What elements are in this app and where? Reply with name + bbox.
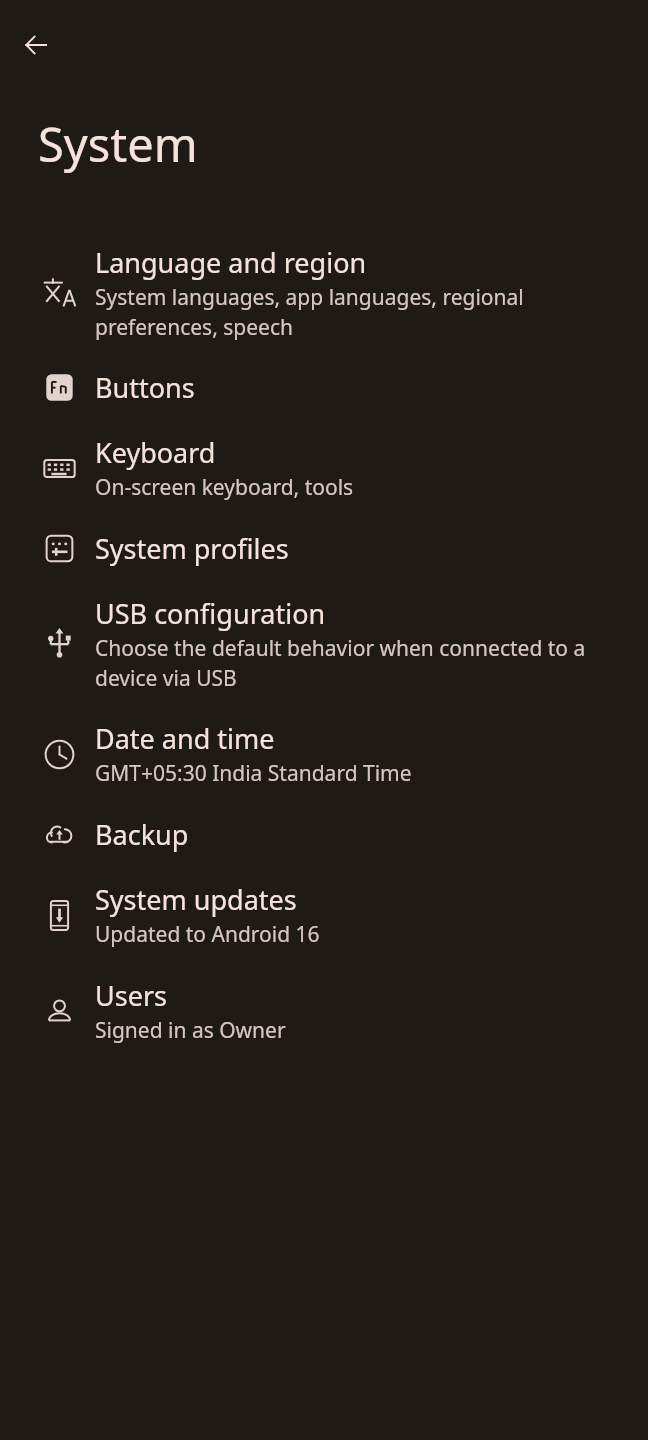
staticText: On-screen keyboard, tools xyxy=(95,473,354,502)
staticText: Date and time xyxy=(95,720,275,757)
staticText: Users xyxy=(95,977,167,1014)
button[interactable]: Backup xyxy=(0,802,648,867)
staticText: Choose the default behavior when connect… xyxy=(95,634,624,692)
button[interactable]: USB configuration xyxy=(0,581,648,706)
button[interactable]: Users xyxy=(0,963,648,1059)
staticText: System updates xyxy=(95,881,297,918)
staticText: Buttons xyxy=(95,369,195,406)
button[interactable]: Buttons xyxy=(0,355,648,420)
button[interactable]: System profiles xyxy=(0,516,648,581)
staticText: Keyboard xyxy=(95,434,216,471)
staticText: USB configuration xyxy=(95,595,326,632)
staticText: Signed in as Owner xyxy=(95,1016,286,1045)
staticText: Updated to Android 16 xyxy=(95,920,320,949)
staticText: Language and region xyxy=(95,244,367,281)
staticText: System xyxy=(38,112,198,176)
button[interactable]: Keyboard xyxy=(0,420,648,516)
staticText: GMT+05:30 India Standard Time xyxy=(95,759,412,788)
button[interactable]: Back xyxy=(12,21,60,69)
staticText: System profiles xyxy=(95,530,289,567)
staticText: System languages, app languages, regiona… xyxy=(95,283,624,341)
button[interactable]: System updates xyxy=(0,867,648,963)
staticText: Backup xyxy=(95,816,189,853)
button[interactable]: Language and region xyxy=(0,230,648,355)
button[interactable]: Date and time xyxy=(0,706,648,802)
